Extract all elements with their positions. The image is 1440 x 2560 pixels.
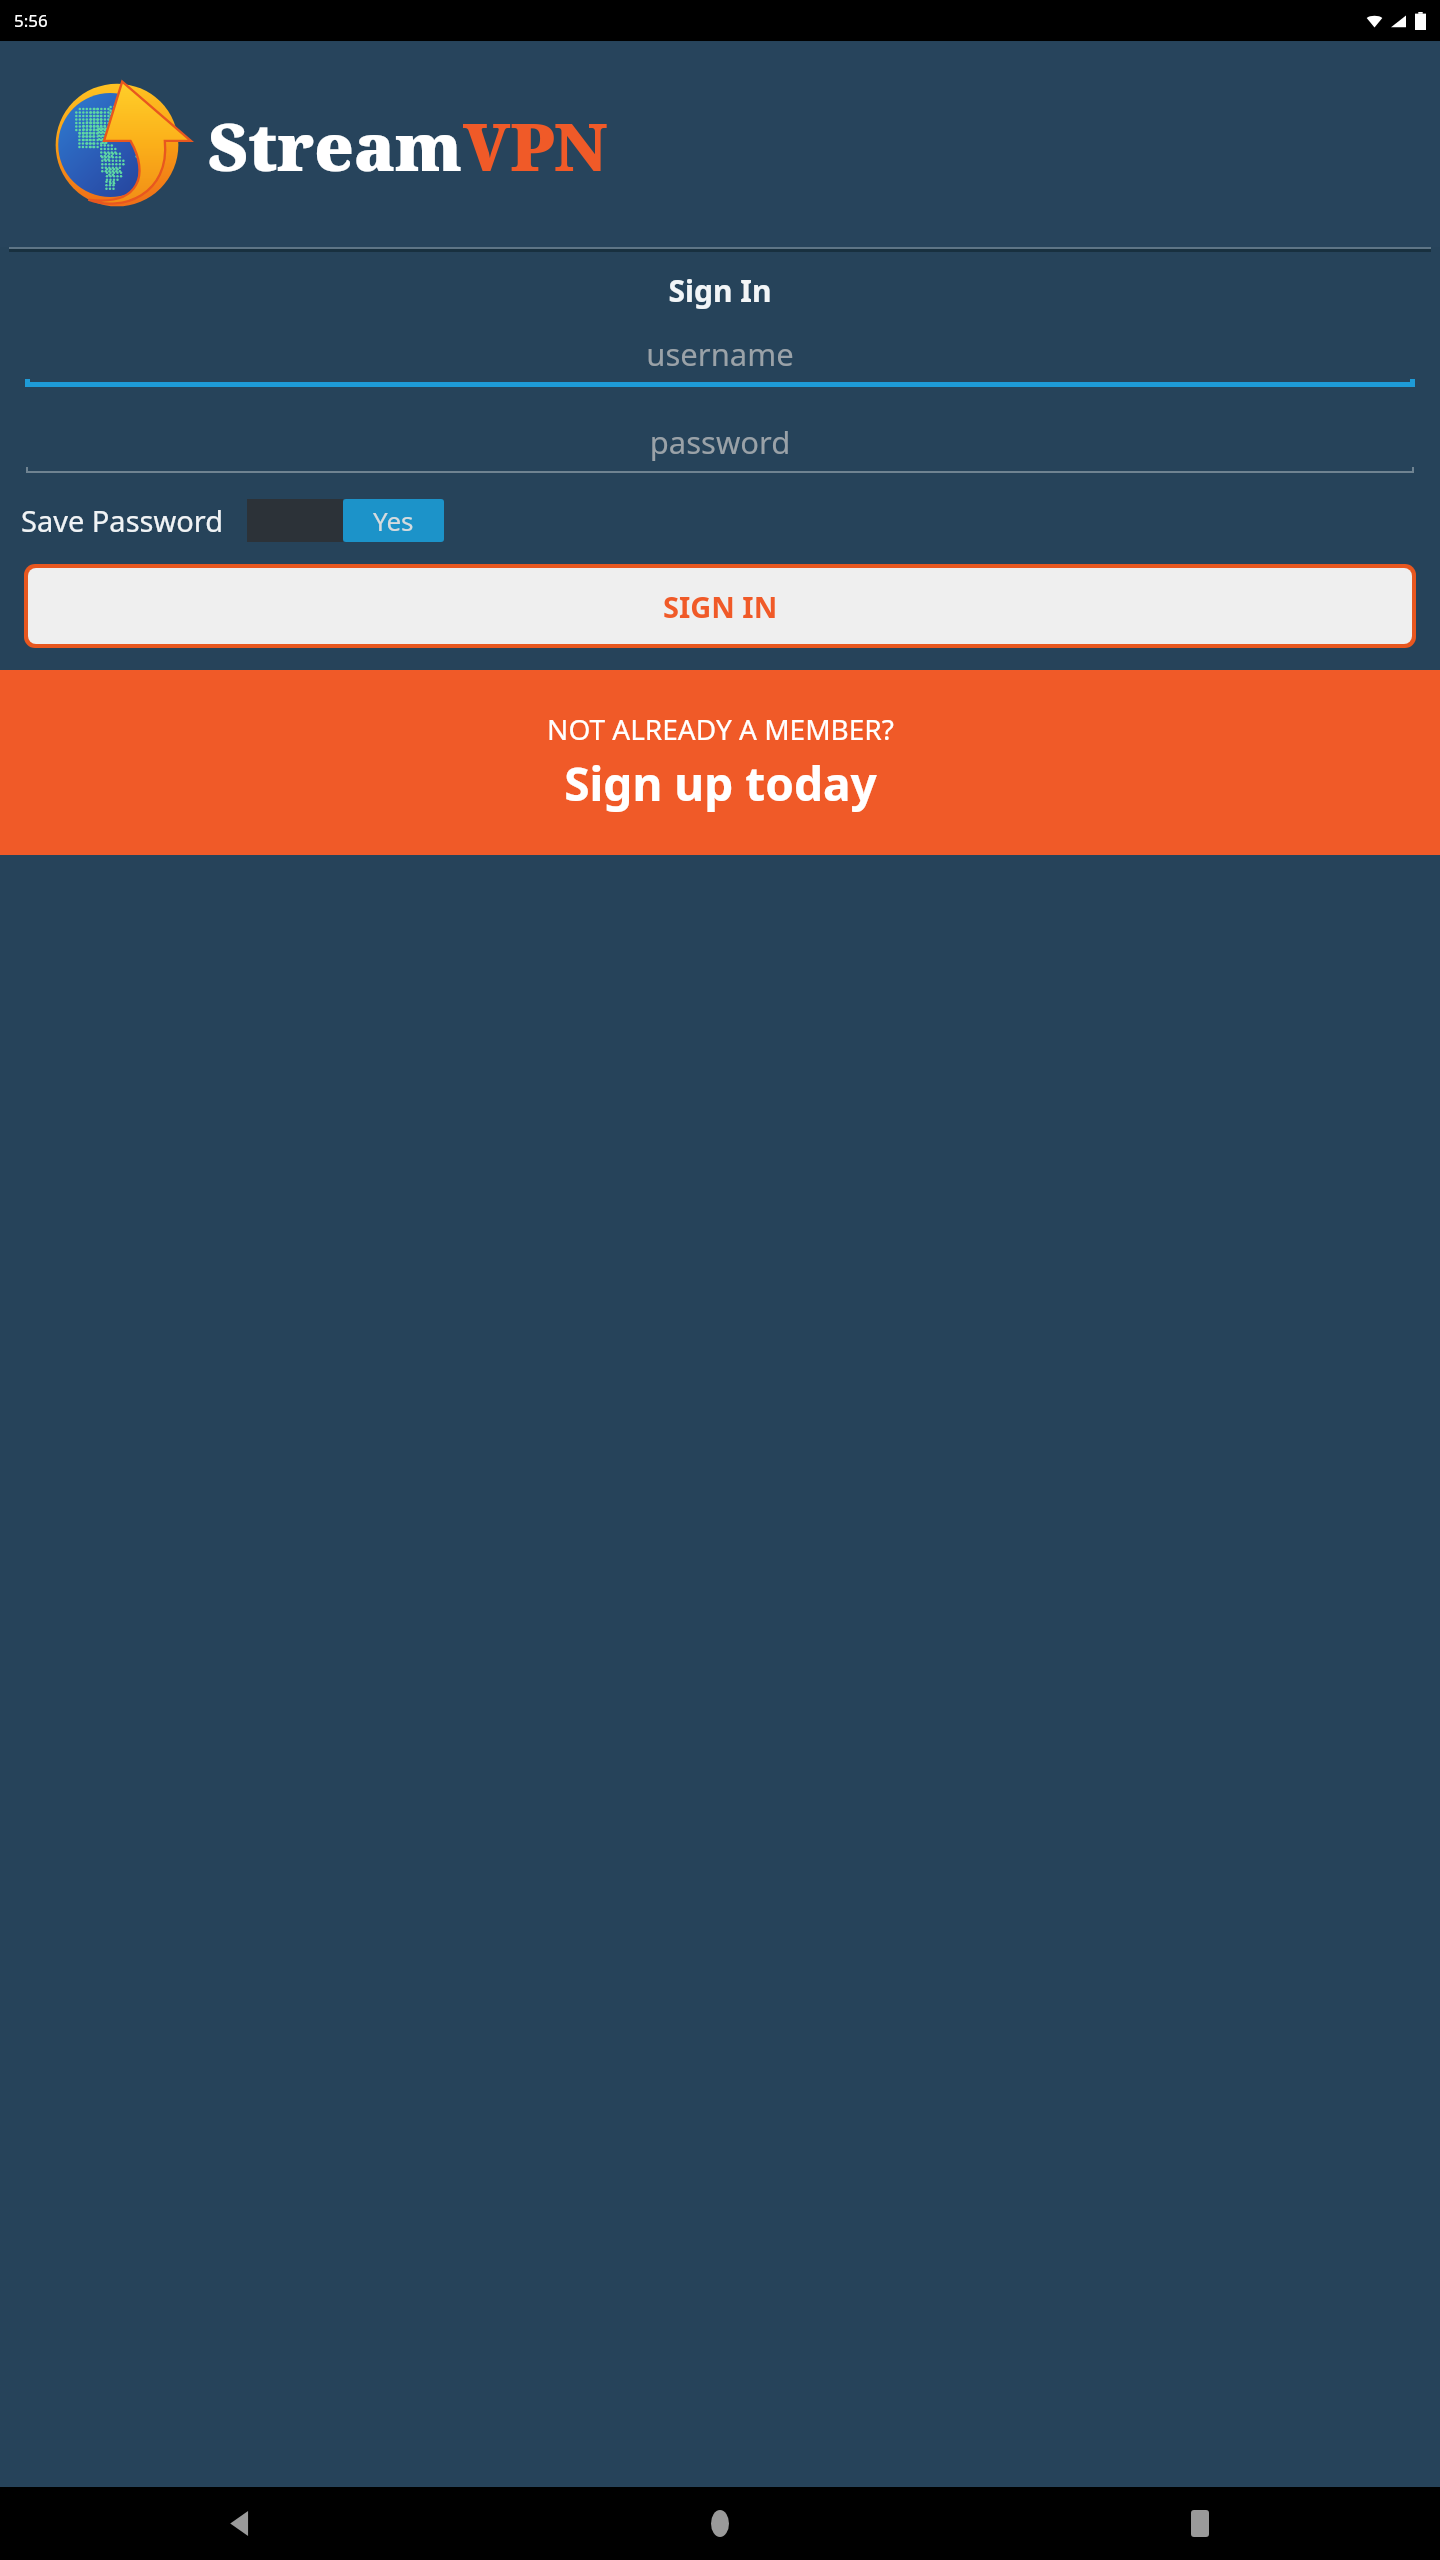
staticText: SIGN IN [663,587,778,626]
button[interactable]: username [25,333,1415,387]
button[interactable]: SIGN IN [28,568,1412,644]
staticText: 5:56 [14,9,48,32]
staticText: Yes [373,503,414,538]
button[interactable]: Back [0,2487,480,2560]
button[interactable]: NOT ALREADY A MEMBER? [0,670,1440,855]
button[interactable]: Save Password toggle, on [247,499,444,542]
staticText: NOT ALREADY A MEMBER? [547,710,894,748]
staticText: password [26,421,1414,463]
button[interactable]: Home [480,2487,960,2560]
staticText: VPN [463,100,608,190]
staticText: Stream [208,100,463,190]
staticText: username [25,333,1415,375]
staticText: Sign up today [564,752,877,815]
button[interactable]: password [26,421,1414,473]
button[interactable]: Recent apps [960,2487,1440,2560]
staticText: Save Password [21,501,223,540]
staticText: Sign In [0,270,1440,311]
